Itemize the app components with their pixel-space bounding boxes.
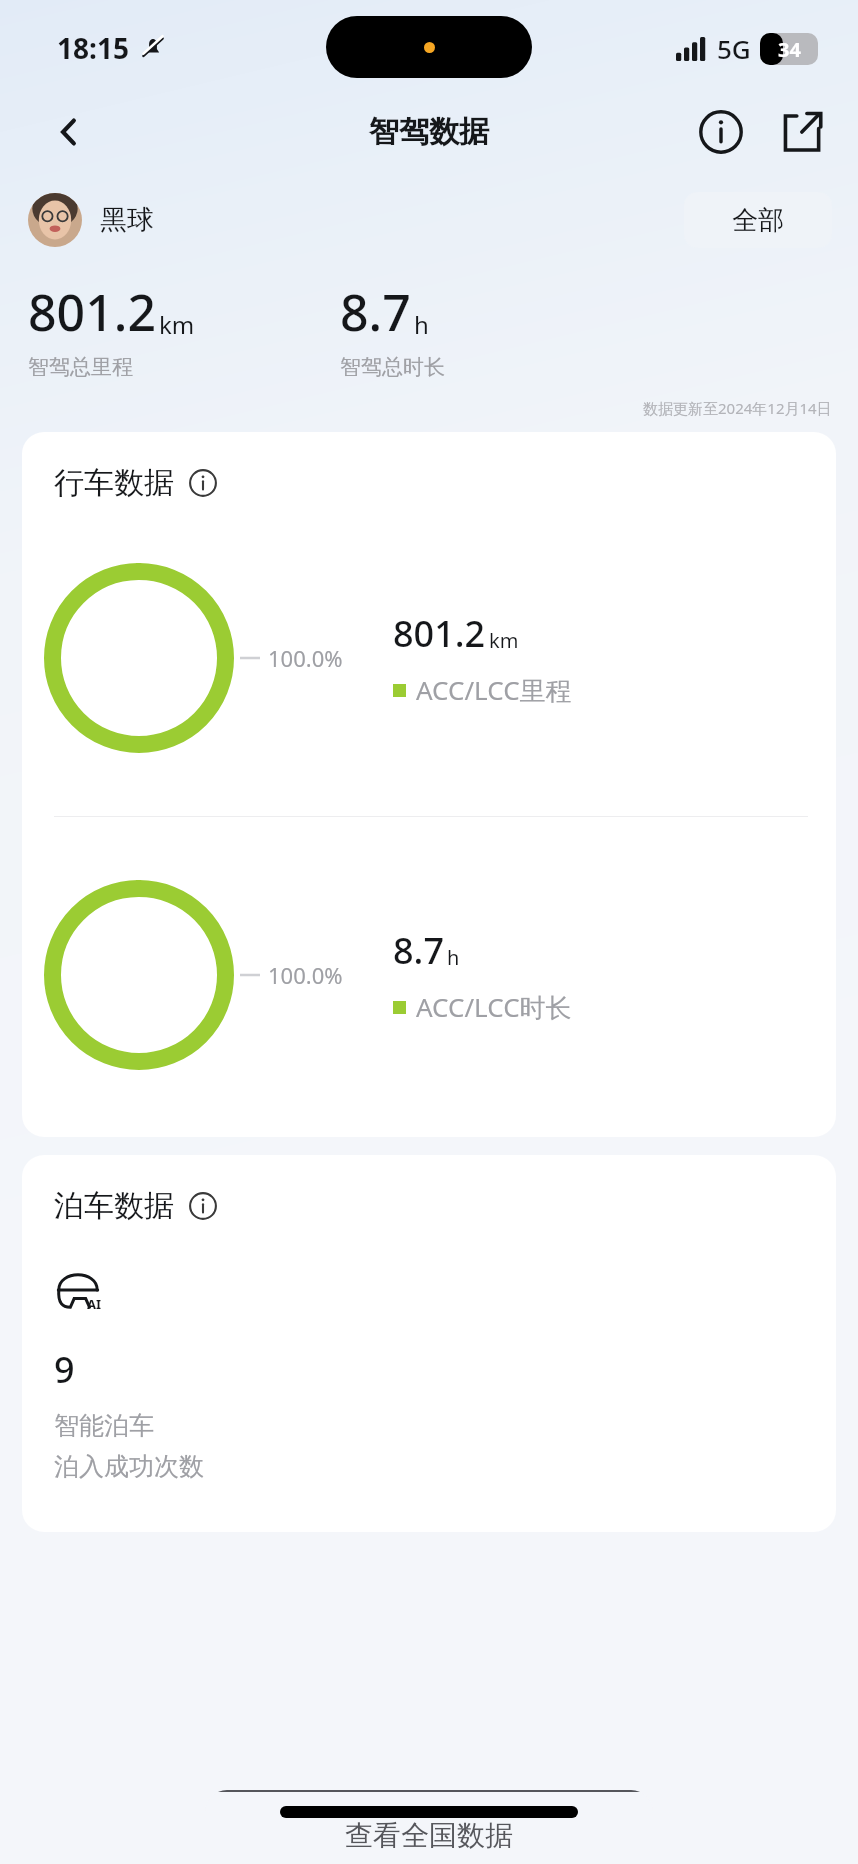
button[interactable]: Share xyxy=(772,103,830,161)
staticText: 黑球 xyxy=(100,203,154,237)
staticText: 100.0% xyxy=(268,960,343,990)
staticText: h xyxy=(447,944,460,971)
button[interactable]: 查看全国数据 xyxy=(205,1790,653,1864)
staticText: 801.2 xyxy=(393,609,486,658)
staticText: 行车数据 xyxy=(54,464,174,502)
staticText: ACC/LCC里程 xyxy=(416,672,572,708)
staticText: h xyxy=(414,308,429,341)
staticText: 查看全国数据 xyxy=(345,1818,513,1853)
staticText: 智能泊车 xyxy=(54,1410,154,1441)
button[interactable]: 行车数据 xyxy=(22,432,836,1137)
staticText: 801.2 xyxy=(28,278,156,346)
staticText: 智驾数据 xyxy=(369,113,489,151)
staticText: 34 xyxy=(778,36,801,63)
staticText: AI xyxy=(87,1295,102,1313)
button[interactable]: Info xyxy=(692,103,750,161)
staticText: 18:15 xyxy=(57,29,129,67)
staticText: km xyxy=(489,627,519,654)
staticText: 8.7 xyxy=(340,278,411,346)
staticText: 8.7 xyxy=(393,926,444,975)
staticText: ACC/LCC时长 xyxy=(416,989,572,1025)
staticText: 100.0% xyxy=(268,643,343,673)
staticText: 5G xyxy=(717,31,751,66)
button[interactable]: 全部 xyxy=(684,192,832,248)
staticText: 智驾总时长 xyxy=(340,354,445,380)
staticText: 数据更新至2024年12月14日 xyxy=(643,398,832,418)
button[interactable]: 行车数据 说明 xyxy=(186,466,220,500)
staticText: km xyxy=(159,308,195,341)
staticText: 泊入成功次数 xyxy=(54,1451,204,1482)
button[interactable]: 泊车数据 xyxy=(22,1155,836,1532)
staticText: 9 xyxy=(54,1345,75,1394)
staticText: 全部 xyxy=(732,204,784,237)
button[interactable]: Back xyxy=(42,105,96,159)
button[interactable]: 泊车数据 说明 xyxy=(186,1189,220,1223)
staticText: 泊车数据 xyxy=(54,1187,174,1225)
staticText: 智驾总里程 xyxy=(28,354,133,380)
